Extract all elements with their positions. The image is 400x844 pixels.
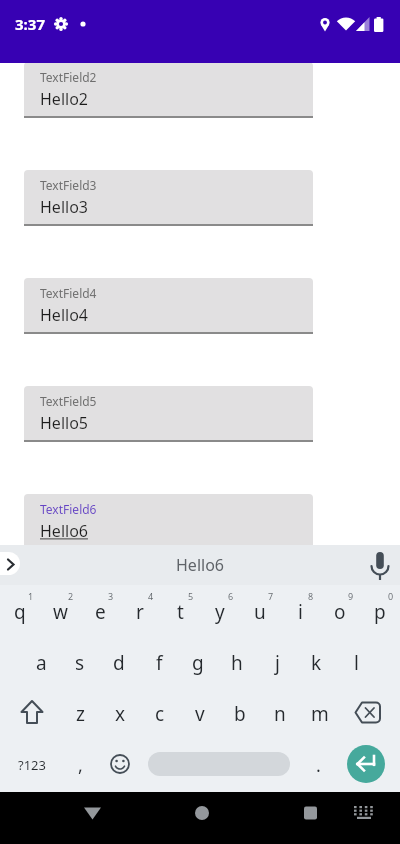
staticText: TextField6	[40, 501, 97, 517]
button[interactable]: m	[300, 687, 340, 738]
button[interactable]	[104, 738, 136, 792]
staticText: 8	[308, 590, 314, 602]
staticText: x	[115, 701, 126, 727]
button[interactable]: ,	[66, 738, 94, 792]
staticText: z	[76, 701, 85, 727]
button[interactable]	[344, 687, 400, 738]
button[interactable]	[0, 687, 56, 738]
staticText: p	[374, 599, 386, 625]
button[interactable]	[148, 752, 290, 776]
staticText: k	[311, 650, 322, 676]
button[interactable]: d	[99, 636, 139, 687]
button[interactable]: e	[80, 585, 120, 636]
staticText: Hello6	[40, 520, 88, 542]
staticText: a	[36, 650, 47, 676]
button[interactable]: TextField3	[24, 170, 313, 226]
button[interactable]: TextField5	[24, 386, 313, 442]
staticText: 6	[228, 590, 234, 602]
staticText: o	[334, 599, 346, 625]
button[interactable]: n	[260, 687, 300, 738]
button[interactable]: u	[240, 585, 280, 636]
button[interactable]: i	[280, 585, 320, 636]
staticText: TextField3	[40, 177, 97, 193]
staticText: e	[95, 599, 106, 625]
button[interactable]	[292, 792, 330, 844]
button[interactable]: s	[60, 636, 100, 687]
button[interactable]: z	[60, 687, 100, 738]
button[interactable]: g	[178, 636, 218, 687]
staticText: 1	[28, 590, 34, 602]
button[interactable]	[347, 745, 385, 783]
staticText: q	[14, 599, 26, 625]
button[interactable]	[74, 792, 112, 844]
staticText: h	[231, 650, 243, 676]
staticText: g	[192, 650, 204, 676]
button[interactable]	[350, 792, 380, 844]
staticText: i	[298, 599, 303, 625]
staticText: TextField4	[40, 285, 97, 301]
staticText: .	[316, 753, 321, 778]
staticText: s	[75, 650, 85, 676]
button[interactable]: h	[217, 636, 257, 687]
staticText: ?123	[18, 756, 46, 774]
staticText: Hello3	[40, 196, 88, 218]
staticText: Hello2	[40, 88, 88, 110]
button[interactable]: t	[160, 585, 200, 636]
staticText: Hello5	[40, 412, 88, 434]
staticText: y	[215, 599, 225, 625]
staticText: b	[234, 701, 246, 727]
button[interactable]: j	[257, 636, 297, 687]
button[interactable]: o	[320, 585, 360, 636]
button[interactable]: c	[140, 687, 180, 738]
staticText: Hello6	[176, 554, 224, 576]
staticText: Hello4	[40, 304, 88, 326]
button[interactable]: f	[139, 636, 179, 687]
staticText: 9	[348, 590, 354, 602]
staticText: r	[136, 599, 144, 625]
button[interactable]: l	[336, 636, 376, 687]
button[interactable]: r	[120, 585, 160, 636]
staticText: f	[156, 650, 163, 676]
staticText: 5	[188, 590, 194, 602]
staticText: 2	[68, 590, 74, 602]
staticText: u	[254, 599, 266, 625]
button[interactable]: p	[360, 585, 400, 636]
button[interactable]: q	[0, 585, 40, 636]
staticText: 4	[148, 590, 154, 602]
button[interactable]: Hello6	[176, 554, 224, 576]
staticText: TextField5	[40, 393, 97, 409]
button[interactable]: .	[304, 738, 332, 792]
staticText: w	[53, 599, 68, 625]
staticText: t	[177, 599, 184, 625]
button[interactable]: x	[100, 687, 140, 738]
button[interactable]: a	[21, 636, 61, 687]
button[interactable]	[0, 552, 20, 575]
button[interactable]: y	[200, 585, 240, 636]
staticText: 7	[268, 590, 274, 602]
staticText: 3	[108, 590, 114, 602]
staticText: m	[311, 701, 329, 727]
staticText: 0	[388, 590, 394, 602]
button[interactable]: TextField6	[24, 494, 313, 550]
button[interactable]: TextField2	[24, 62, 313, 118]
staticText: j	[275, 650, 280, 676]
staticText: ,	[78, 753, 83, 778]
button[interactable]: k	[296, 636, 336, 687]
staticText: TextField2	[40, 69, 97, 85]
button[interactable]: ?123	[4, 738, 60, 792]
button[interactable]	[183, 792, 221, 844]
button[interactable]: b	[220, 687, 260, 738]
staticText: l	[354, 650, 359, 676]
staticText: 3:37	[15, 14, 45, 34]
button[interactable]: w	[40, 585, 80, 636]
button[interactable]: v	[180, 687, 220, 738]
staticText: c	[155, 701, 165, 727]
staticText: n	[274, 701, 286, 727]
staticText: d	[113, 650, 125, 676]
button[interactable]: TextField4	[24, 278, 313, 334]
staticText: v	[195, 701, 205, 727]
